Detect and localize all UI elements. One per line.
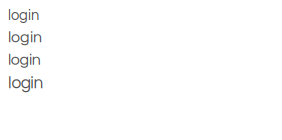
staticText: login xyxy=(8,8,39,23)
staticText: login xyxy=(8,52,41,68)
staticText: login xyxy=(8,74,44,92)
staticText: login xyxy=(8,29,42,46)
